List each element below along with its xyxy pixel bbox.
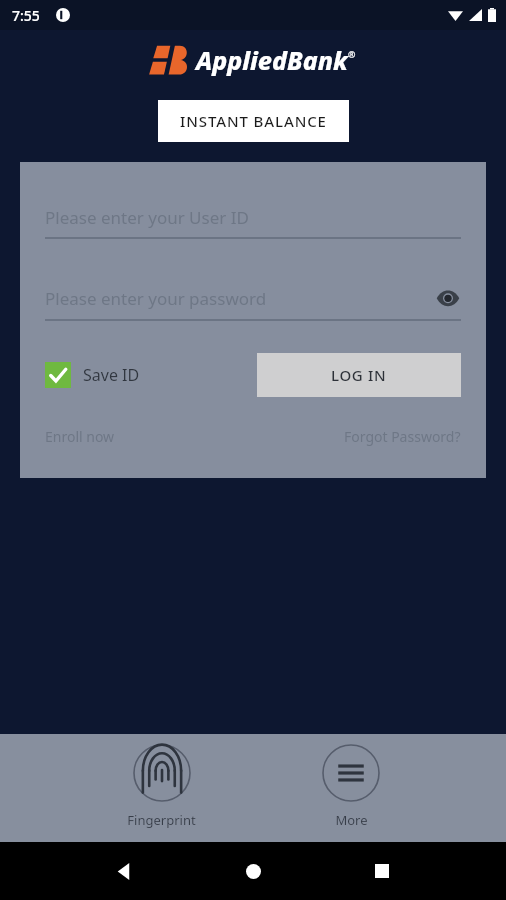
staticText: Fingerprint [127, 811, 196, 829]
button[interactable]: Recent apps [367, 856, 397, 886]
staticText: More [335, 811, 368, 829]
button[interactable]: LOG IN [257, 353, 461, 397]
button[interactable]: Home [238, 856, 268, 886]
staticText: Save ID [83, 364, 140, 386]
button[interactable]: Enroll now [45, 427, 115, 446]
button[interactable]: Show password [435, 285, 461, 311]
staticText: Please enter your User ID [45, 206, 249, 229]
button[interactable]: Back [109, 856, 139, 886]
staticText: Forgot Password? [344, 427, 461, 446]
button[interactable]: Please enter your User ID [45, 206, 461, 239]
staticText: AppliedBank [196, 43, 348, 77]
button[interactable]: Save ID [45, 362, 140, 388]
staticText: Please enter your password [45, 287, 267, 310]
staticText: Enroll now [45, 427, 115, 446]
button[interactable]: Forgot Password? [344, 427, 461, 446]
staticText: ® [348, 48, 356, 60]
staticText: INSTANT BALANCE [180, 111, 327, 131]
button[interactable]: Please enter your password [45, 285, 461, 321]
staticText: 7:55 [12, 6, 40, 25]
staticText: LOG IN [331, 365, 387, 385]
button[interactable]: Fingerprint login [127, 734, 196, 829]
button[interactable]: More options [322, 734, 380, 829]
button[interactable]: INSTANT BALANCE [158, 100, 349, 142]
